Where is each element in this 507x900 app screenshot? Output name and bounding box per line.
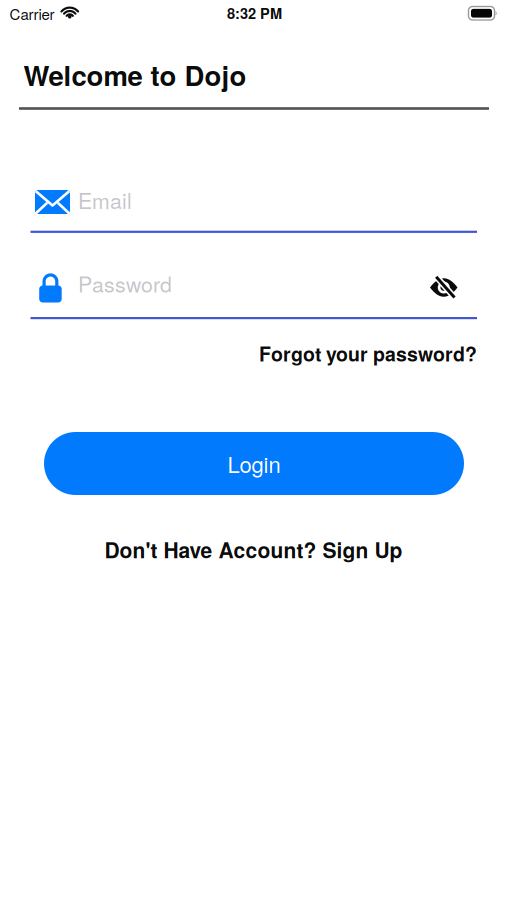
button[interactable]: Don't Have Account? Sign Up [104, 534, 402, 565]
button[interactable]: Forgot your password? [259, 339, 477, 367]
staticText: Don't Have Account? Sign Up [104, 534, 402, 565]
staticText: Password [78, 268, 172, 298]
staticText: 8:32 PM [227, 2, 282, 23]
button[interactable]: Login [44, 432, 464, 495]
staticText: Login [227, 448, 280, 479]
staticText: Welcome to Dojo [23, 55, 246, 94]
staticText: Email [78, 184, 132, 215]
button[interactable]: Show password [430, 277, 457, 298]
staticText: Carrier [9, 3, 54, 24]
staticText: Forgot your password? [259, 339, 477, 367]
